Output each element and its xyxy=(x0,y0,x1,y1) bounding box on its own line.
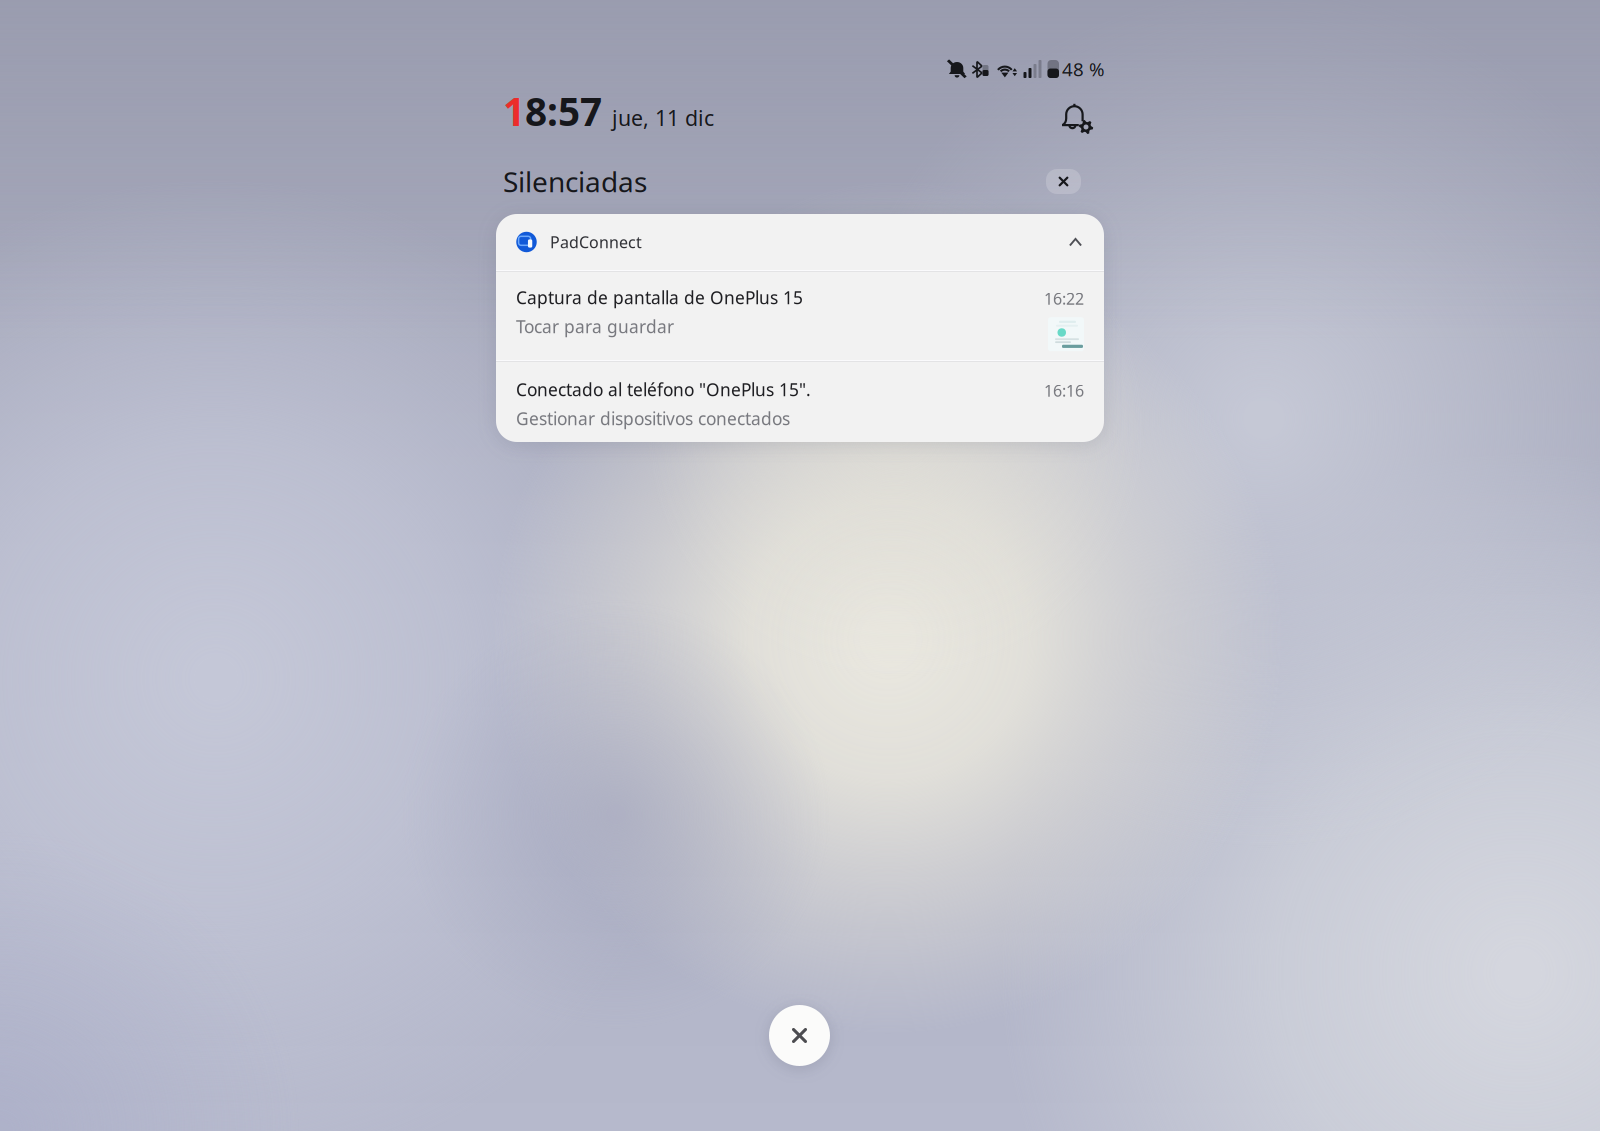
staticText: Silenciadas xyxy=(503,163,647,200)
staticText: 8:57 xyxy=(525,85,602,137)
button[interactable]: Clear silenced notifications xyxy=(1046,169,1081,194)
button[interactable]: PadConnect xyxy=(496,214,1104,270)
button[interactable]: Conectado al teléfono "OnePlus 15". xyxy=(496,362,1104,442)
staticText: 16:22 xyxy=(1044,288,1084,309)
staticText: 1 xyxy=(503,85,525,137)
button[interactable]: Notification settings xyxy=(1050,94,1098,140)
staticText: Captura de pantalla de OnePlus 15 xyxy=(516,286,803,309)
staticText: jue, 11 dic xyxy=(612,104,714,132)
button[interactable]: Captura de pantalla de OnePlus 15 xyxy=(496,272,1104,360)
staticText: Gestionar dispositivos conectados xyxy=(516,407,790,430)
staticText: Conectado al teléfono "OnePlus 15". xyxy=(516,378,811,401)
staticText: 48 % xyxy=(1062,57,1105,81)
button[interactable]: Close notification shade xyxy=(769,1005,830,1066)
staticText: Tocar para guardar xyxy=(516,315,674,338)
staticText: 16:16 xyxy=(1044,380,1084,401)
staticText: PadConnect xyxy=(550,231,642,253)
